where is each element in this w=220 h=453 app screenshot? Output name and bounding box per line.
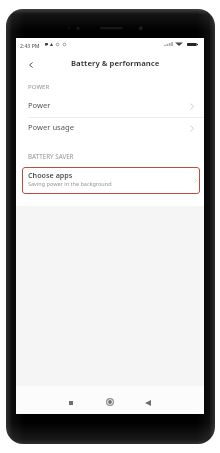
staticText: Choose apps bbox=[28, 170, 73, 180]
button[interactable]: Recents bbox=[61, 393, 81, 413]
button[interactable]: Power bbox=[16, 96, 204, 117]
button[interactable]: Choose apps bbox=[22, 167, 200, 194]
staticText: BATTERY SAVER bbox=[28, 152, 74, 161]
staticText: Saving power in the background bbox=[28, 180, 112, 187]
staticText: Power usage bbox=[28, 122, 74, 132]
button[interactable]: Back bbox=[22, 56, 40, 74]
staticText: POWER bbox=[28, 82, 50, 90]
staticText: 2:43 PM bbox=[20, 42, 40, 49]
staticText: Power bbox=[28, 100, 51, 110]
button[interactable]: Back bbox=[138, 393, 158, 413]
button[interactable]: Power usage bbox=[16, 117, 204, 140]
staticText: Battery & performance bbox=[71, 58, 160, 68]
button[interactable]: Home bbox=[100, 392, 120, 412]
